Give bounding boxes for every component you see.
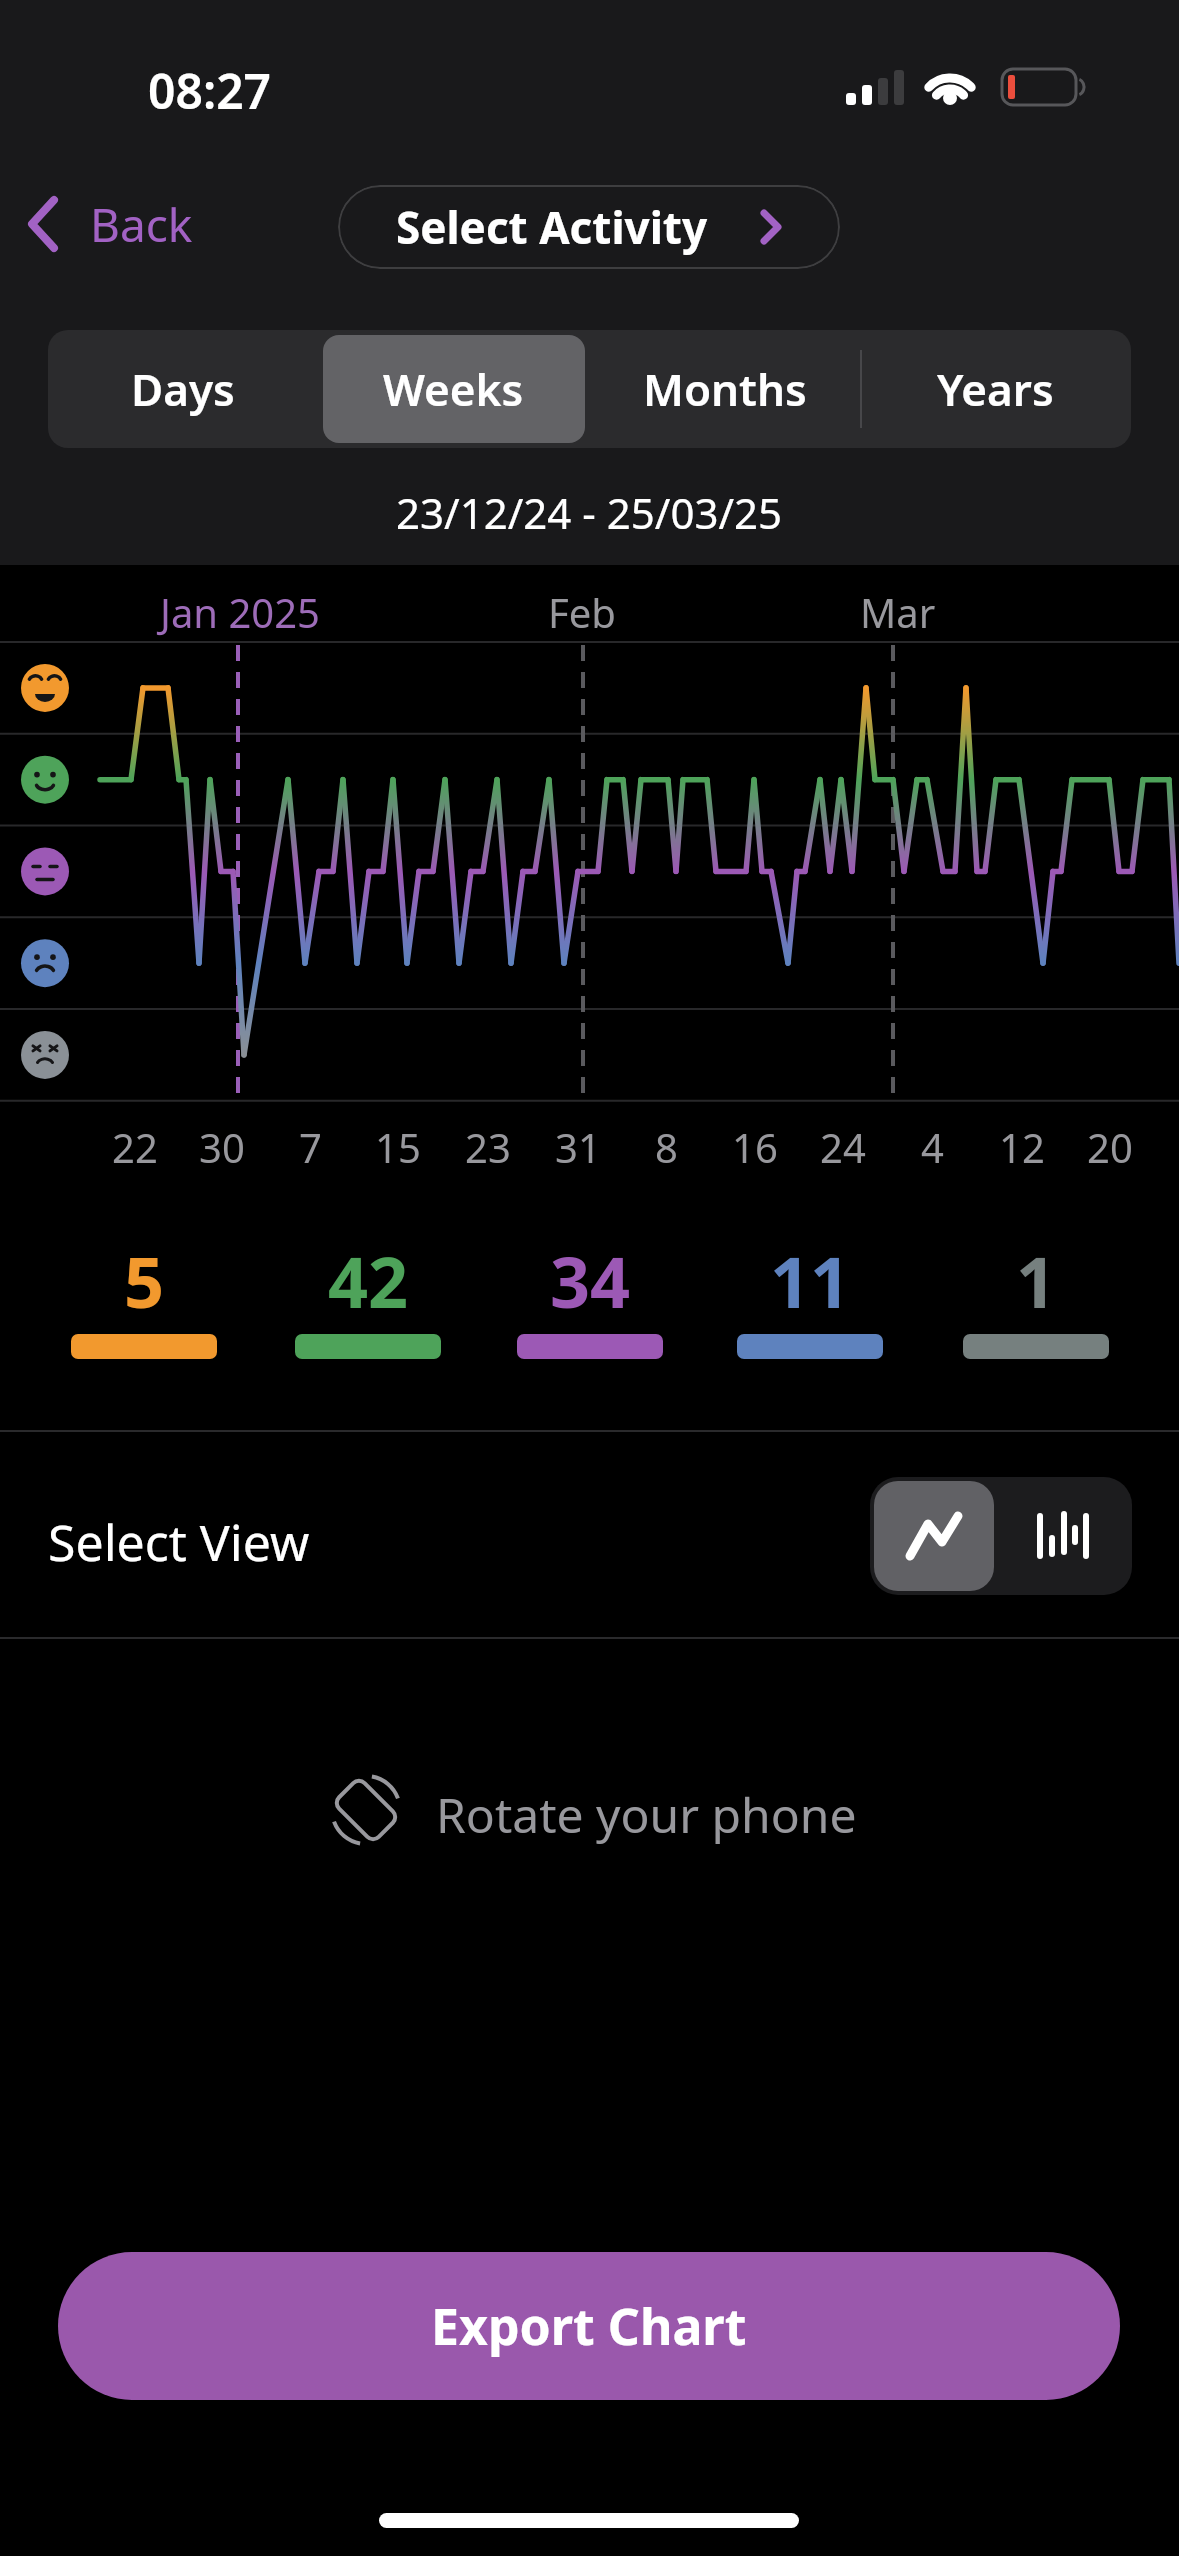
staticText: 34 (550, 1233, 631, 1328)
button[interactable]: Select Activity (338, 185, 840, 269)
staticText: 20 (1087, 1120, 1133, 1174)
staticText: 11 (770, 1233, 851, 1328)
button[interactable]: Years (860, 330, 1131, 448)
staticText: Mar (860, 585, 936, 639)
button[interactable] (998, 1481, 1128, 1591)
staticText: 16 (732, 1120, 778, 1174)
staticText: Months (643, 359, 807, 419)
staticText: 23 (465, 1120, 511, 1174)
staticText: 24 (820, 1120, 866, 1174)
staticText: Export Chart (431, 2292, 747, 2360)
staticText: Feb (548, 585, 616, 639)
button[interactable] (874, 1481, 994, 1591)
staticText: Select View (48, 1508, 310, 1576)
staticText: 30 (199, 1120, 245, 1174)
staticText: Select Activity (396, 197, 708, 257)
staticText: Days (131, 359, 235, 419)
button[interactable]: Days (48, 330, 318, 448)
staticText: 7 (299, 1120, 322, 1174)
staticText: Jan 2025 (160, 585, 320, 639)
staticText: 15 (375, 1120, 421, 1174)
staticText: 23/12/24 - 25/03/25 (396, 484, 783, 541)
staticText: 8 (655, 1120, 678, 1174)
staticText: Rotate your phone (436, 1782, 857, 1847)
staticText: 31 (555, 1120, 601, 1174)
staticText: 12 (999, 1120, 1045, 1174)
staticText: 1 (1016, 1233, 1057, 1328)
staticText: 22 (112, 1120, 158, 1174)
button[interactable]: Months (589, 330, 860, 448)
button[interactable]: Export Chart (58, 2252, 1120, 2400)
staticText: 08:27 (148, 58, 272, 123)
staticText: 42 (328, 1233, 409, 1328)
staticText: Weeks (383, 359, 524, 419)
button[interactable]: Back (24, 192, 193, 256)
staticText: 5 (124, 1233, 165, 1328)
staticText: Back (90, 193, 193, 256)
staticText: Years (937, 359, 1054, 419)
button[interactable]: Weeks (318, 330, 589, 448)
staticText: 4 (921, 1120, 944, 1174)
